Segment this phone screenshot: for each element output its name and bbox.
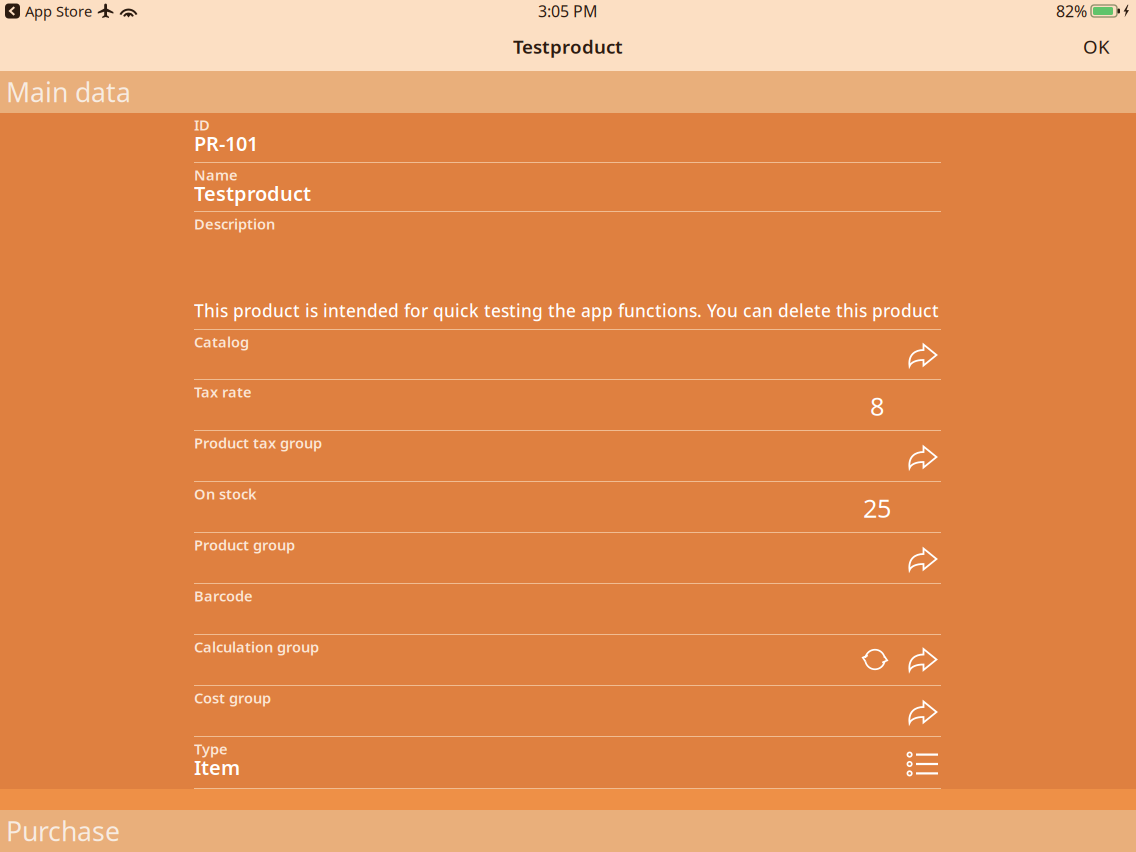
button[interactable]: Product tax group	[194, 431, 941, 482]
staticText: App Store	[25, 1, 92, 21]
staticText: PR-101	[194, 130, 258, 157]
button[interactable]: Type	[194, 737, 941, 789]
staticText: Barcode	[194, 586, 253, 605]
staticText: Description	[194, 214, 275, 233]
staticText: Calculation group	[194, 637, 319, 656]
staticText: ID	[194, 115, 210, 134]
button[interactable]: Description	[194, 212, 941, 330]
staticText: On stock	[194, 484, 257, 503]
staticText: 82%	[1056, 0, 1087, 22]
button[interactable]: Catalog	[194, 330, 941, 380]
staticText: OK	[1083, 34, 1110, 59]
button[interactable]: Cost group	[194, 686, 941, 737]
button[interactable]: OK	[1070, 24, 1123, 69]
staticText: Testproduct	[513, 34, 623, 59]
staticText: This product is intended for quick testi…	[194, 299, 939, 322]
button[interactable]: Barcode	[194, 584, 941, 635]
staticText: Item	[194, 754, 240, 781]
staticText: 3:05 PM	[538, 0, 598, 22]
staticText: Cost group	[194, 688, 271, 707]
staticText: Purchase	[6, 813, 120, 849]
button[interactable]: Product group	[194, 533, 941, 584]
staticText: 25	[863, 491, 891, 525]
staticText: Type	[194, 739, 228, 758]
button[interactable]: Back to App Store	[0, 1, 92, 21]
staticText: Product group	[194, 535, 295, 554]
staticText: 8	[870, 389, 884, 423]
staticText: Catalog	[194, 332, 249, 351]
button[interactable]: ID	[194, 113, 941, 163]
button[interactable]: Calculation group	[194, 635, 941, 686]
staticText: Name	[194, 165, 238, 184]
staticText: Tax rate	[194, 382, 252, 401]
button[interactable]: On stock	[194, 482, 941, 533]
staticText: Main data	[6, 74, 131, 110]
button[interactable]: Tax rate	[194, 380, 941, 431]
button[interactable]: Name	[194, 163, 941, 212]
staticText: Testproduct	[194, 180, 311, 207]
staticText: Product tax group	[194, 433, 322, 452]
